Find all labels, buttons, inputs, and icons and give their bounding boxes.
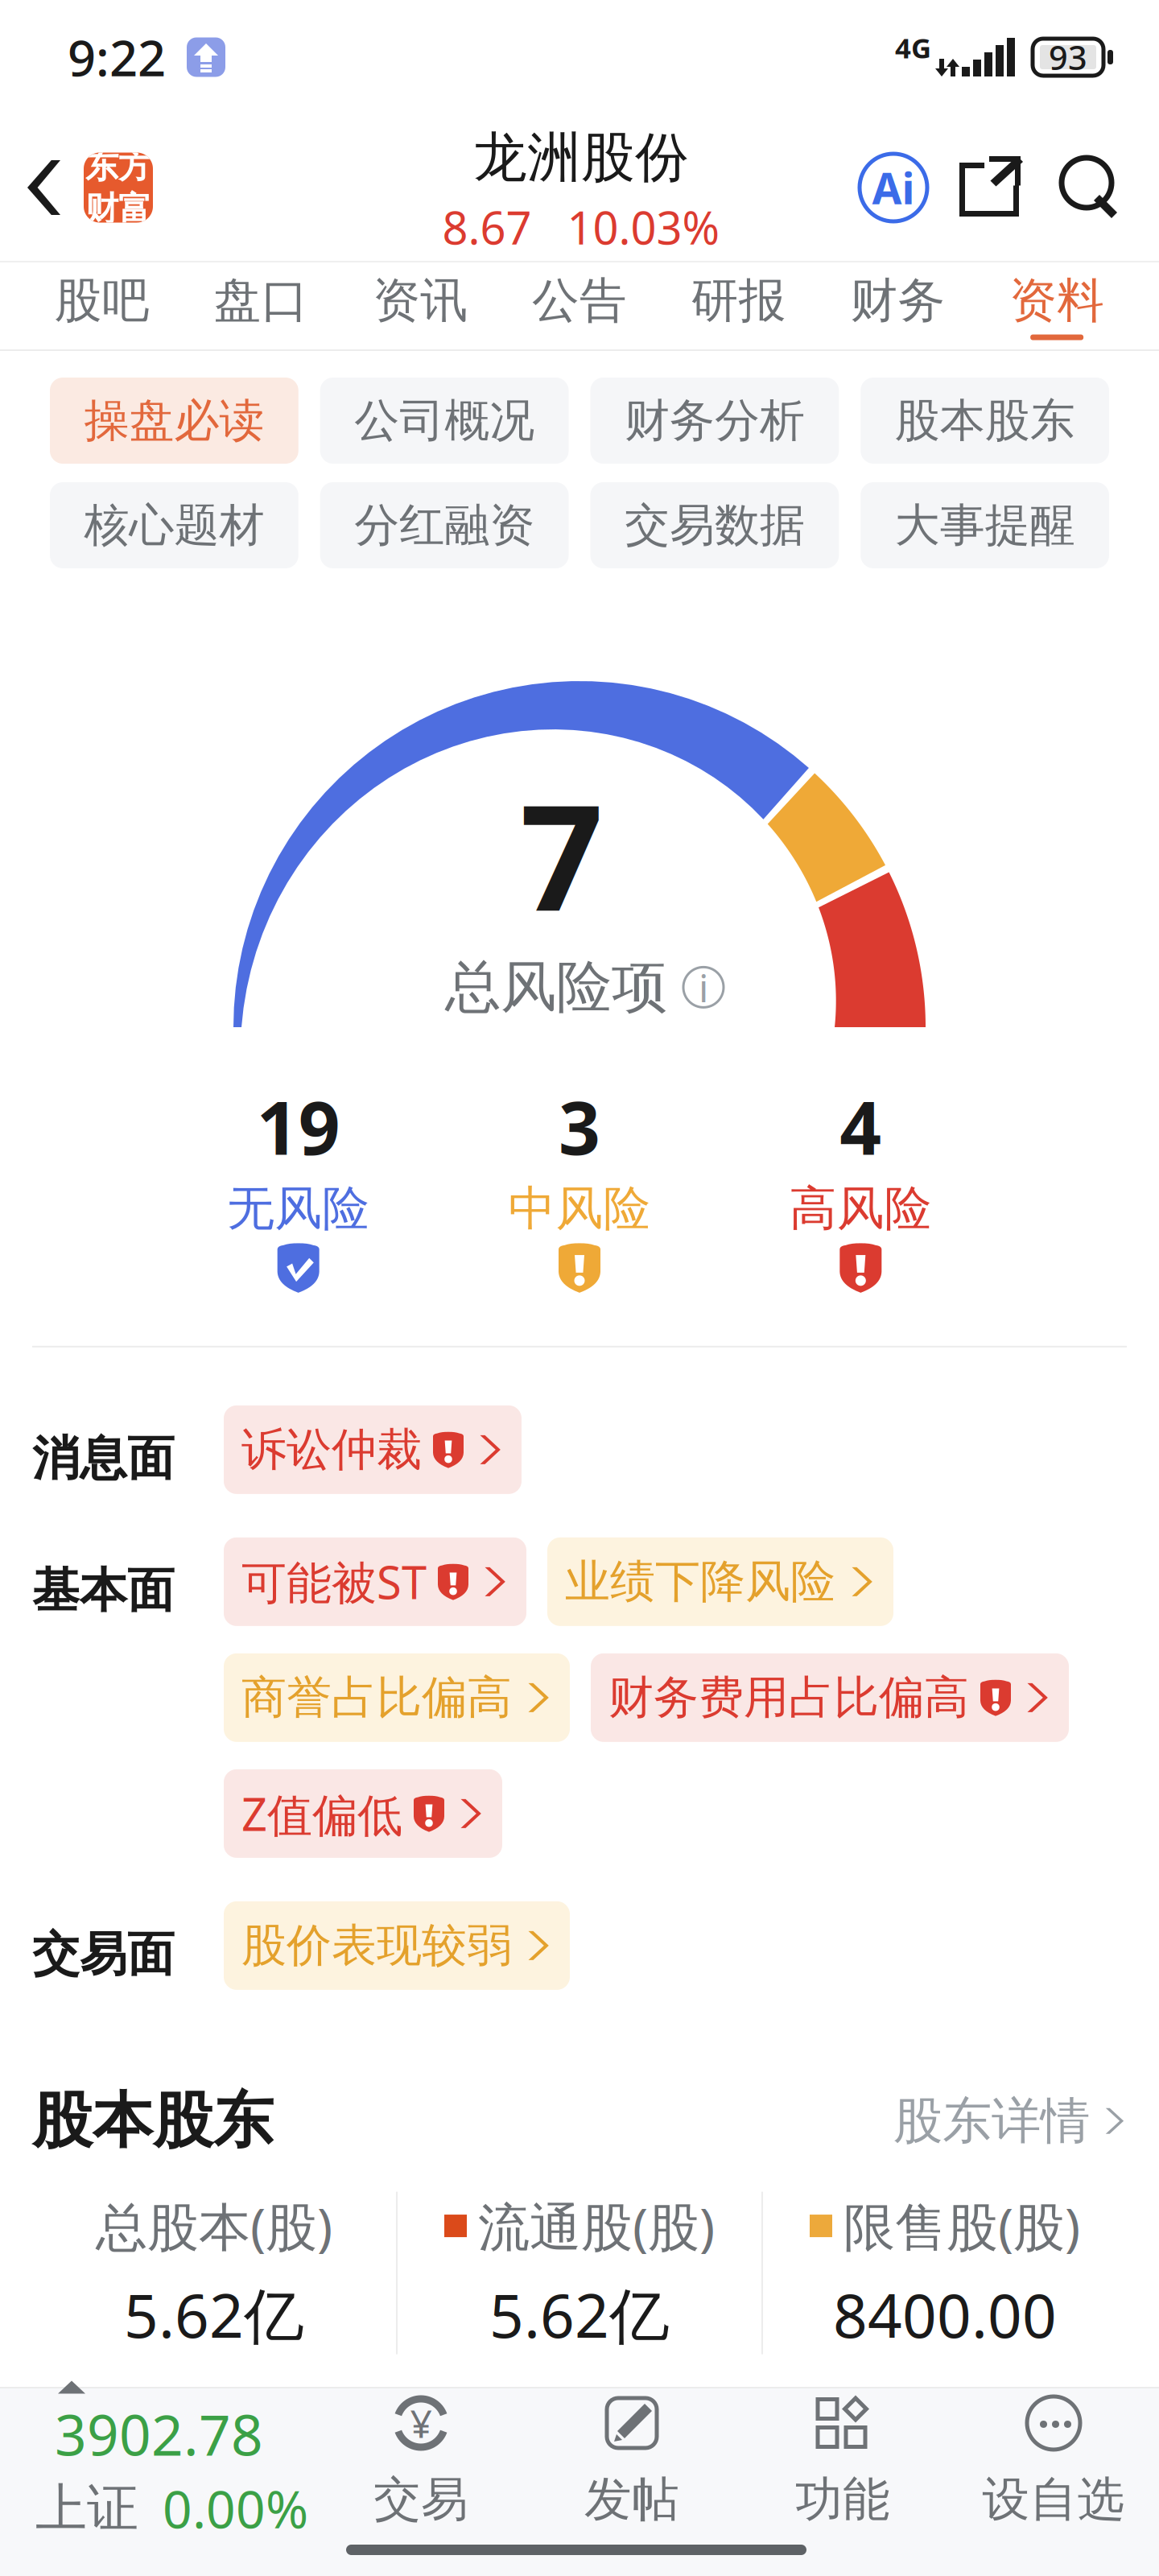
staticText: 东方 [85, 146, 151, 187]
staticText: 大事提醒 [895, 498, 1075, 553]
staticText: 发帖 [584, 2471, 679, 2529]
staticText: 公司概况 [354, 393, 535, 448]
staticText: 总风险项 [445, 953, 667, 1022]
button[interactable]: 股吧 [23, 272, 182, 340]
button[interactable]: 财务分析 [590, 378, 839, 464]
staticText: 龙洲股份 [473, 125, 689, 191]
staticText: 交易面 [32, 1925, 175, 1984]
button[interactable]: 公司概况 [320, 378, 569, 464]
staticText: 19 [257, 1078, 340, 1175]
button[interactable]: Search [1058, 155, 1124, 221]
button[interactable]: 研报 [659, 272, 818, 340]
button[interactable]: 盘口 [182, 272, 341, 340]
button[interactable]: 功能 [737, 2395, 948, 2529]
staticText: 研报 [691, 272, 786, 330]
staticText: 可能被ST [241, 1552, 427, 1612]
staticText: i [699, 962, 708, 1013]
staticText: 10.03% [567, 197, 720, 257]
staticText: 无风险 [227, 1180, 370, 1238]
staticText: 上证 [35, 2477, 138, 2540]
staticText: Ai [872, 159, 915, 216]
button[interactable]: 资料 [977, 272, 1136, 340]
staticText: 诉讼仲裁 [241, 1422, 422, 1477]
button[interactable]: 3902.78 [0, 2381, 316, 2543]
staticText: 股价表现较弱 [241, 1918, 512, 1973]
staticText: 股东详情 [893, 2091, 1090, 2151]
staticText: 8.67 [442, 197, 532, 257]
button[interactable]: ¥ [316, 2395, 526, 2529]
button[interactable]: 交易数据 [590, 482, 839, 568]
staticText: 盘口 [214, 272, 309, 330]
button[interactable]: 业绩下降风险 [547, 1537, 893, 1626]
staticText: 设自选 [982, 2471, 1125, 2529]
button[interactable]: 分红融资 [320, 482, 569, 568]
staticText: 财务 [850, 272, 945, 330]
staticText: 基本面 [32, 1562, 175, 1620]
button[interactable]: 财务费用占比偏高 [591, 1653, 1069, 1742]
staticText: 股本股东 [32, 2084, 274, 2158]
button[interactable]: 可能被ST [224, 1537, 526, 1626]
button[interactable]: 股东详情 [893, 2091, 1127, 2151]
button[interactable]: 操盘必读 [50, 378, 298, 464]
staticText: 操盘必读 [84, 393, 264, 448]
staticText: 商誉占比偏高 [241, 1670, 512, 1725]
staticText: 财务费用占比偏高 [608, 1670, 969, 1725]
staticText: 3 [559, 1078, 600, 1175]
button[interactable]: Z值偏低 [224, 1769, 502, 1858]
button[interactable]: 设自选 [948, 2395, 1159, 2529]
button[interactable]: 大事提醒 [861, 482, 1109, 568]
button[interactable]: 发帖 [526, 2395, 737, 2529]
button[interactable]: 资讯 [341, 272, 500, 340]
staticText: Z值偏低 [241, 1783, 402, 1844]
staticText: 5.62亿 [124, 2275, 304, 2354]
staticText: 交易 [373, 2471, 468, 2529]
staticText: 5.62亿 [489, 2275, 670, 2354]
staticText: 功能 [795, 2471, 890, 2529]
staticText: 资讯 [373, 272, 468, 330]
staticText: 8400.00 [833, 2275, 1057, 2354]
staticText: 4 [840, 1078, 882, 1175]
staticText: 分红融资 [354, 498, 535, 553]
staticText: 消息面 [32, 1430, 175, 1488]
staticText: 限售股(股) [843, 2192, 1080, 2260]
staticText: 财富 [85, 188, 151, 229]
button[interactable]: 诉讼仲裁 [224, 1405, 522, 1494]
staticText: 9:22 [68, 24, 166, 90]
staticText: 公告 [532, 272, 627, 330]
staticText: 7 [520, 758, 604, 951]
button[interactable]: East Money [84, 153, 153, 223]
staticText: 业绩下降风险 [565, 1554, 835, 1609]
staticText: 核心题材 [84, 498, 264, 553]
button[interactable]: 财务 [818, 272, 977, 340]
staticText: 3902.78 [55, 2397, 263, 2471]
staticText: 股吧 [55, 272, 150, 330]
staticText: 高风险 [789, 1180, 932, 1238]
button[interactable]: Back [14, 147, 73, 228]
staticText: 4G [895, 29, 931, 66]
staticText: 资料 [1009, 272, 1104, 330]
staticText: 中风险 [508, 1180, 651, 1238]
staticText: 总股本(股) [96, 2192, 332, 2260]
button[interactable]: 核心题材 [50, 482, 298, 568]
staticText: 0.00% [163, 2474, 308, 2543]
staticText: 财务分析 [624, 393, 805, 448]
button[interactable]: 股价表现较弱 [224, 1901, 570, 1990]
staticText: 93 [1049, 35, 1087, 79]
staticText: 交易数据 [624, 498, 805, 553]
button[interactable]: 公告 [500, 272, 659, 340]
staticText: 流通股(股) [478, 2192, 715, 2260]
button[interactable]: AI [860, 154, 927, 221]
button[interactable]: Share [959, 155, 1025, 221]
button[interactable]: 商誉占比偏高 [224, 1653, 570, 1742]
button[interactable]: 股本股东 [861, 378, 1109, 464]
staticText: 股本股东 [895, 393, 1075, 448]
staticText: ¥ [410, 2397, 432, 2449]
